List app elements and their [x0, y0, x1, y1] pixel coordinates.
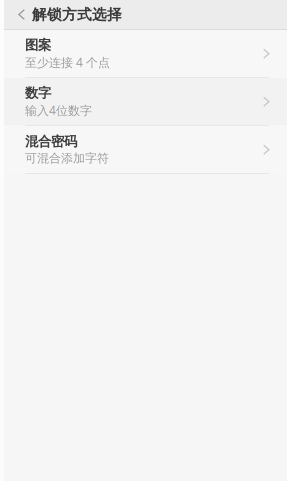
button[interactable]: 图案 — [4, 30, 287, 77]
staticText: 解锁方式选择 — [32, 5, 122, 23]
staticText: 至少连接 4 个点 — [25, 54, 110, 70]
staticText: 图案 — [25, 37, 51, 53]
button[interactable]: Back — [4, 0, 32, 29]
staticText: 数字 — [25, 85, 51, 101]
staticText: 输入4位数字 — [25, 102, 92, 118]
staticText: 混合密码 — [25, 133, 77, 150]
button[interactable]: 数字 — [4, 78, 287, 125]
button[interactable]: 混合密码 — [4, 126, 287, 173]
staticText: 可混合添加字符 — [25, 151, 109, 165]
